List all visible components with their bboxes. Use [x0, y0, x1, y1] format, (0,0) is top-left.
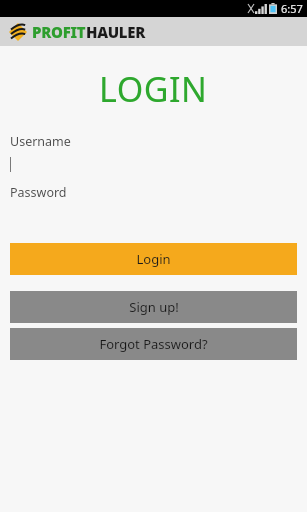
staticText: Password [10, 184, 67, 201]
staticText: 6:57 [281, 1, 303, 16]
staticText: PROFIT [32, 22, 86, 42]
other: ProfitHauler logo [9, 23, 27, 41]
button[interactable] [0, 156, 307, 176]
staticText: Sign up! [129, 298, 179, 316]
staticText: Username [10, 133, 71, 150]
staticText: Forgot Password? [99, 335, 208, 353]
staticText: HAULER [86, 22, 146, 42]
staticText: Login [136, 250, 171, 268]
staticText: LOGIN [99, 66, 208, 112]
button[interactable]: Forgot Password? [10, 328, 297, 360]
button[interactable]: Sign up! [10, 291, 297, 323]
button[interactable]: Login [10, 243, 297, 275]
